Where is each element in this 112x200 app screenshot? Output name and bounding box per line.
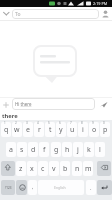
button[interactable]: q: [1, 122, 11, 137]
button[interactable]: s: [17, 142, 27, 157]
staticText: h: [65, 145, 70, 155]
staticText: ?123: [5, 186, 12, 190]
staticText: 4: [37, 121, 39, 125]
button[interactable]: [1, 161, 15, 176]
staticText: o: [92, 125, 97, 135]
button[interactable]: j: [73, 142, 83, 157]
staticText: r: [38, 125, 41, 135]
staticText: z: [19, 164, 23, 174]
button[interactable]: [3, 11, 10, 16]
staticText: 7: [70, 121, 72, 125]
staticText: v: [52, 164, 56, 174]
staticText: e: [26, 125, 30, 135]
staticText: c: [41, 164, 45, 174]
button[interactable]: a: [6, 142, 16, 157]
staticText: ,: [32, 184, 34, 191]
button[interactable]: Hi there: [12, 98, 95, 110]
staticText: u: [70, 125, 75, 135]
staticText: a: [9, 145, 13, 155]
staticText: English: [54, 185, 66, 190]
button[interactable]: n: [72, 161, 82, 176]
button[interactable]: v: [49, 161, 59, 176]
staticText: q: [4, 125, 9, 135]
button[interactable]: x: [27, 161, 37, 176]
button[interactable]: r: [34, 122, 44, 137]
button[interactable]: To: [12, 9, 99, 19]
staticText: y: [59, 125, 63, 135]
staticText: 8: [81, 121, 83, 125]
staticText: 6: [59, 121, 61, 125]
button[interactable]: f: [39, 142, 49, 157]
button[interactable]: ,: [28, 180, 37, 195]
button[interactable]: h: [62, 142, 72, 157]
staticText: m: [85, 164, 92, 174]
staticText: there: [2, 112, 18, 120]
button[interactable]: [100, 102, 108, 108]
staticText: 9: [92, 121, 94, 125]
staticText: 3: [26, 121, 28, 125]
button[interactable]: [101, 10, 110, 18]
button[interactable]: [38, 180, 84, 195]
staticText: b: [63, 164, 68, 174]
staticText: t: [49, 125, 52, 135]
button[interactable]: e: [23, 122, 33, 137]
staticText: 2:19 PM: [93, 1, 108, 6]
button[interactable]: o: [89, 122, 99, 137]
staticText: 0: [103, 121, 105, 125]
staticText: w: [14, 125, 20, 135]
staticText: l: [99, 145, 101, 155]
button[interactable]: b: [60, 161, 70, 176]
staticText: g: [54, 145, 59, 155]
button[interactable]: [2, 101, 10, 109]
button[interactable]: y: [56, 122, 66, 137]
staticText: k: [87, 145, 91, 155]
staticText: x: [30, 164, 34, 174]
button[interactable]: [16, 180, 27, 195]
button[interactable]: p: [100, 122, 110, 137]
button[interactable]: [97, 161, 111, 176]
button[interactable]: w: [12, 122, 22, 137]
button[interactable]: [97, 180, 112, 195]
staticText: 1: [4, 121, 6, 125]
staticText: 2: [15, 121, 17, 125]
button[interactable]: c: [38, 161, 48, 176]
button[interactable]: t: [45, 122, 55, 137]
staticText: n: [75, 164, 80, 174]
button[interactable]: m: [83, 161, 93, 176]
staticText: j: [77, 145, 79, 155]
staticText: d: [31, 145, 36, 155]
button[interactable]: l: [95, 142, 105, 157]
button[interactable]: there: [2, 112, 18, 120]
staticText: .: [90, 184, 92, 191]
button[interactable]: u: [67, 122, 77, 137]
staticText: p: [103, 125, 108, 135]
button[interactable]: g: [51, 142, 61, 157]
staticText: To: [15, 11, 21, 18]
button[interactable]: ?123: [1, 180, 15, 195]
button[interactable]: z: [16, 161, 26, 176]
button[interactable]: .: [86, 180, 96, 195]
staticText: Hi there: [15, 101, 32, 107]
staticText: s: [20, 145, 24, 155]
button[interactable]: k: [84, 142, 94, 157]
button[interactable]: i: [78, 122, 88, 137]
staticText: i: [82, 125, 84, 135]
staticText: f: [43, 145, 46, 155]
button[interactable]: d: [28, 142, 38, 157]
staticText: 5: [48, 121, 50, 125]
